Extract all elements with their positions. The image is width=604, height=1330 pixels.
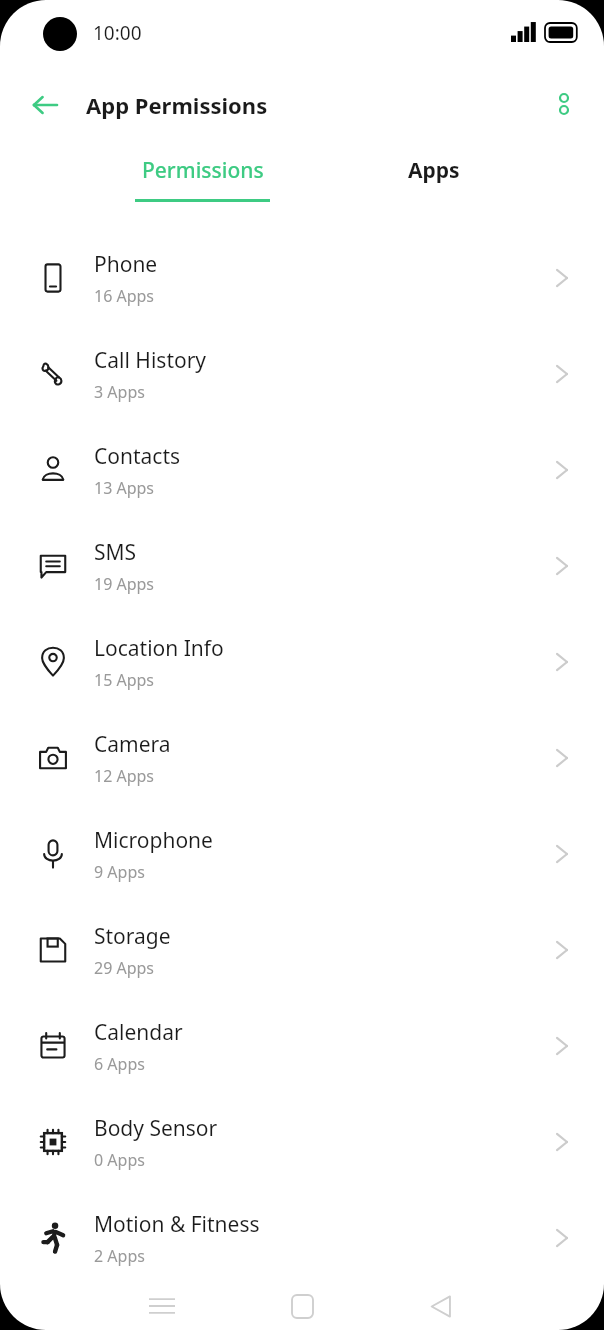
button[interactable]: Apps	[336, 140, 532, 216]
staticText: 12 Apps	[94, 765, 155, 787]
button[interactable]: SMS	[0, 518, 604, 614]
button[interactable]: Contacts	[0, 422, 604, 518]
button[interactable]: More options	[542, 82, 586, 126]
staticText: Camera	[94, 730, 171, 759]
button[interactable]: Phone	[0, 230, 604, 326]
staticText: 6 Apps	[94, 1053, 145, 1075]
button[interactable]: Motion & Fitness	[0, 1190, 604, 1286]
staticText: Permissions	[142, 156, 264, 185]
staticText: Body Sensor	[94, 1114, 218, 1143]
staticText: Microphone	[94, 826, 213, 855]
button[interactable]: Calendar	[0, 998, 604, 1094]
staticText: 2 Apps	[94, 1245, 145, 1267]
staticText: Motion & Fitness	[94, 1210, 260, 1239]
button[interactable]: Call History	[0, 326, 604, 422]
button[interactable]: Back	[408, 1274, 472, 1330]
button[interactable]: Microphone	[0, 806, 604, 902]
staticText: Apps	[408, 156, 460, 185]
button[interactable]: Home	[270, 1274, 334, 1330]
staticText: 3 Apps	[94, 381, 145, 403]
staticText: 9 Apps	[94, 861, 145, 883]
button[interactable]: Back	[22, 82, 68, 128]
staticText: 16 Apps	[94, 285, 155, 307]
button[interactable]: Storage	[0, 902, 604, 998]
button[interactable]: Camera	[0, 710, 604, 806]
button[interactable]: Permissions	[104, 140, 300, 216]
staticText: 29 Apps	[94, 957, 155, 979]
staticText: Contacts	[94, 442, 181, 471]
staticText: Location Info	[94, 634, 224, 663]
staticText: 19 Apps	[94, 573, 155, 595]
button[interactable]: Recent apps	[130, 1274, 194, 1330]
staticText: 15 Apps	[94, 669, 155, 691]
staticText: 10:00	[93, 20, 142, 46]
staticText: 0 Apps	[94, 1149, 145, 1171]
staticText: 13 Apps	[94, 477, 155, 499]
staticText: SMS	[94, 538, 137, 567]
button[interactable]: Location Info	[0, 614, 604, 710]
button[interactable]: Body Sensor	[0, 1094, 604, 1190]
staticText: Phone	[94, 250, 158, 279]
staticText: Calendar	[94, 1018, 183, 1047]
staticText: App Permissions	[86, 90, 268, 120]
staticText: Storage	[94, 922, 171, 951]
staticText: Call History	[94, 346, 207, 375]
